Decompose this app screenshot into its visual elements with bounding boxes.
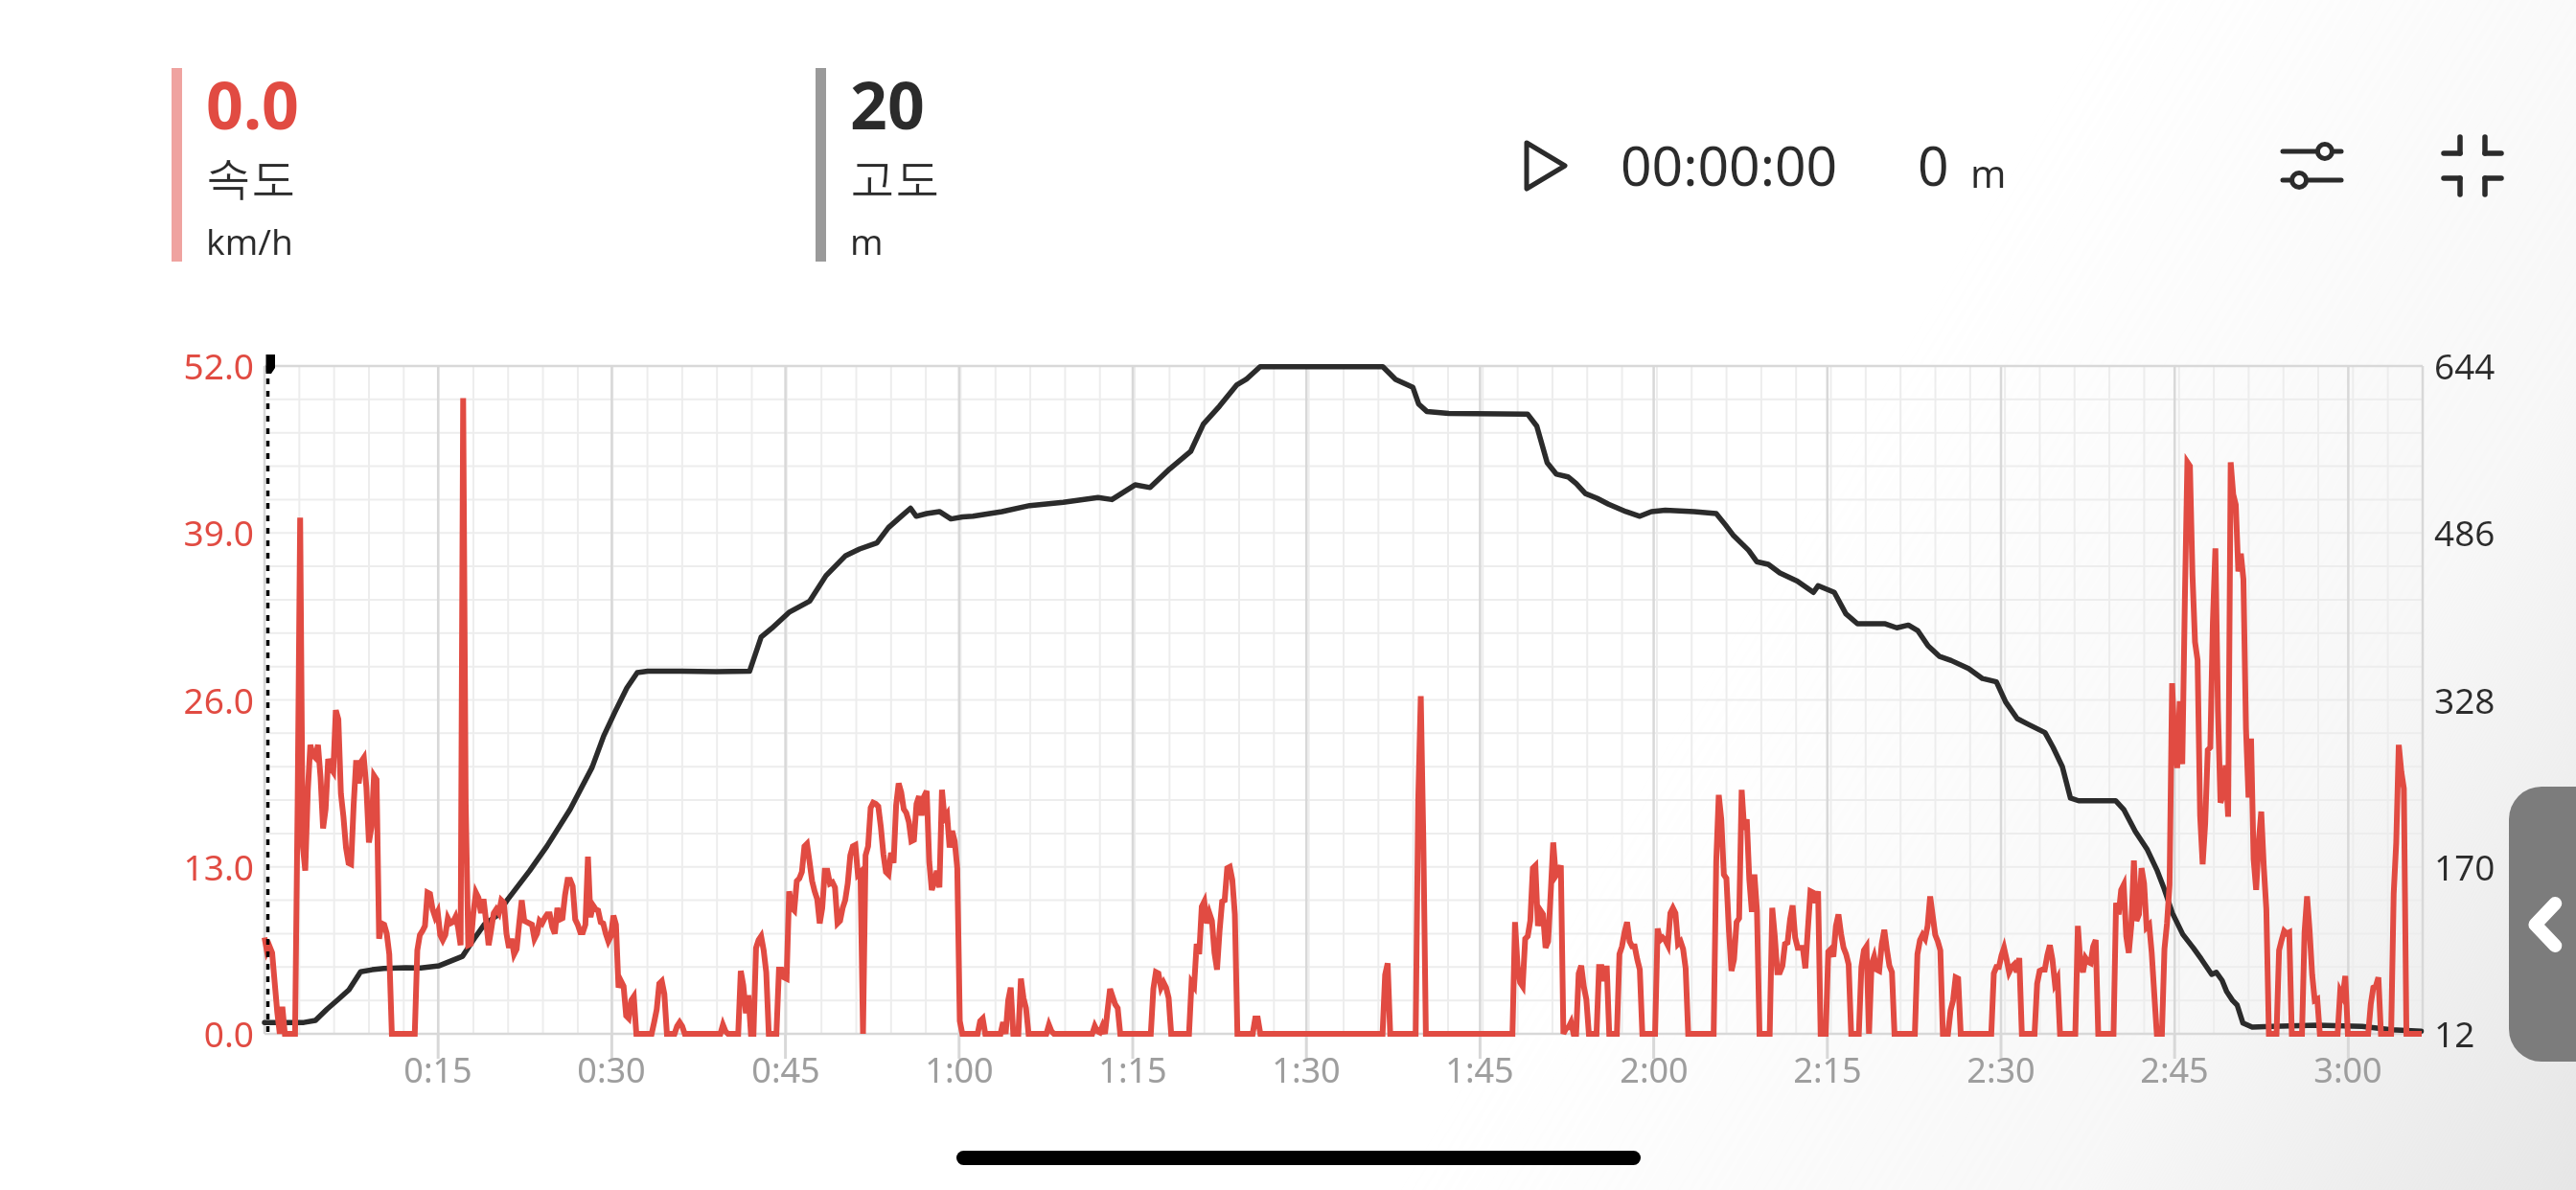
staticText: 328 xyxy=(2434,675,2495,723)
staticText: 26.0 xyxy=(183,675,254,723)
staticText: 20 xyxy=(850,59,925,149)
staticText: 속도 xyxy=(206,150,296,207)
staticText: 170 xyxy=(2434,842,2495,890)
staticText: 39.0 xyxy=(183,508,254,556)
staticText: 00:00:00 xyxy=(1621,127,1838,202)
staticText: 0 xyxy=(1918,127,1949,202)
button[interactable]: 0 xyxy=(1918,127,2007,202)
staticText: 고도 xyxy=(850,150,940,207)
staticText: 1:30 xyxy=(1272,1046,1341,1093)
staticText: 0:15 xyxy=(403,1046,472,1093)
staticText: 486 xyxy=(2434,508,2495,556)
button[interactable]: Expand panel xyxy=(2509,787,2576,1062)
staticText: km/h xyxy=(206,217,293,264)
staticText: 2:00 xyxy=(1620,1046,1689,1093)
button[interactable]: Settings xyxy=(2264,118,2359,214)
staticText: 0.0 xyxy=(206,59,299,149)
staticText: 1:00 xyxy=(925,1046,994,1093)
button[interactable]: Collapse xyxy=(2425,118,2520,214)
staticText: 3:00 xyxy=(2313,1046,2382,1093)
staticText: 12 xyxy=(2434,1009,2475,1057)
button[interactable]: 0.0 xyxy=(172,68,555,262)
staticText: 2:30 xyxy=(1966,1046,2035,1093)
staticText: 52.0 xyxy=(183,341,254,389)
staticText: 1:45 xyxy=(1445,1046,1514,1093)
staticText: m xyxy=(1970,147,2007,198)
staticText: 0:30 xyxy=(577,1046,646,1093)
staticText: 2:45 xyxy=(2140,1046,2209,1093)
staticText: 0.0 xyxy=(203,1009,254,1057)
staticText: 644 xyxy=(2434,341,2495,389)
staticText: 0:45 xyxy=(751,1046,820,1093)
staticText: 13.0 xyxy=(183,842,254,890)
button[interactable]: Play xyxy=(1498,118,1594,214)
staticText: 1:15 xyxy=(1098,1046,1167,1093)
button[interactable]: 20 xyxy=(816,68,1199,262)
staticText: m xyxy=(850,217,884,264)
staticText: 2:15 xyxy=(1793,1046,1862,1093)
button[interactable]: 00:00:00 xyxy=(1621,127,1838,202)
